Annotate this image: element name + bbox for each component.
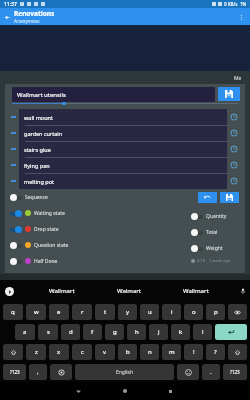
staticText: , [37, 368, 39, 376]
button[interactable]: Save name [218, 87, 240, 101]
staticText: u [148, 308, 152, 316]
button[interactable]: e [49, 304, 69, 320]
button[interactable]: Total [191, 224, 218, 240]
button[interactable]: Question state [10, 237, 69, 253]
button[interactable]: ?123 [223, 364, 247, 380]
staticText: h [135, 328, 139, 336]
button[interactable]: Drop state [10, 221, 59, 237]
staticText: garden curtain [24, 130, 63, 137]
staticText: Anonymous [14, 18, 40, 24]
button[interactable]: m [162, 344, 181, 360]
button[interactable]: Save [220, 192, 239, 203]
button[interactable]: Enter [215, 324, 247, 340]
staticText: Renovations [14, 9, 55, 18]
button[interactable]: p [206, 304, 225, 320]
staticText: Half Done [34, 258, 58, 265]
button[interactable]: l [193, 324, 212, 340]
staticText: Wallmart utensils [17, 91, 66, 99]
staticText: l [202, 328, 204, 336]
staticText: o [192, 308, 196, 316]
staticText: m [169, 348, 175, 356]
button[interactable]: j [149, 324, 168, 340]
button[interactable]: Weight [191, 240, 223, 256]
button[interactable]: Backspace [228, 304, 247, 320]
button[interactable]: Back [71, 384, 85, 398]
button[interactable]: c [72, 344, 92, 360]
button[interactable]: s [38, 324, 58, 340]
button[interactable]: f [83, 324, 102, 340]
staticText: e [57, 308, 61, 316]
button[interactable]: Expand toolbar [5, 287, 14, 296]
button[interactable]: English [75, 364, 174, 380]
button[interactable]: melting pot [5, 173, 245, 189]
staticText: x [57, 348, 61, 356]
button[interactable]: Back [0, 10, 14, 24]
button[interactable]: garden curtain [5, 125, 245, 141]
button[interactable]: u [140, 304, 159, 320]
staticText: c [81, 348, 84, 356]
staticText: d [69, 328, 73, 336]
button[interactable]: Waiting state [10, 205, 65, 221]
button[interactable]: Home [118, 384, 132, 398]
button[interactable]: r [72, 304, 92, 320]
button[interactable]: y [118, 304, 137, 320]
staticText: j [158, 328, 160, 336]
button[interactable]: t [95, 304, 115, 320]
button[interactable]: v [95, 344, 115, 360]
button[interactable]: Shift [3, 344, 23, 360]
button[interactable]: w [26, 304, 46, 320]
button[interactable]: d [61, 324, 80, 340]
button[interactable]: Wallmart utensils [12, 87, 215, 102]
button[interactable]: n [140, 344, 159, 360]
staticText: ? [214, 348, 217, 356]
staticText: Weight [206, 245, 223, 252]
staticText: w [34, 308, 39, 316]
button[interactable]: i [162, 304, 181, 320]
button[interactable]: a [15, 324, 35, 340]
button[interactable]: z [26, 344, 46, 360]
button[interactable]: More options [234, 10, 248, 24]
staticText: . [210, 368, 212, 376]
button[interactable]: . [202, 364, 220, 380]
staticText: ! [193, 348, 195, 356]
button[interactable]: k [171, 324, 190, 340]
button[interactable]: ? [206, 344, 225, 360]
staticText: t [104, 308, 107, 316]
staticText: a [23, 328, 27, 336]
staticText: f [91, 328, 94, 336]
staticText: r [81, 308, 84, 316]
button[interactable]: q [3, 304, 23, 320]
staticText: Quantity [206, 213, 227, 220]
button[interactable]: b [118, 344, 137, 360]
button[interactable]: x [49, 344, 69, 360]
staticText: 2.19 [197, 258, 205, 263]
button[interactable]: Emoji [177, 364, 199, 380]
button[interactable]: Shift [228, 344, 247, 360]
button[interactable]: Half Done [10, 253, 58, 269]
button[interactable]: Undo [198, 192, 217, 203]
button[interactable]: g [105, 324, 124, 340]
staticText: Waiting state [34, 210, 65, 217]
staticText: 1 week ago [209, 258, 231, 263]
staticText: English [116, 369, 134, 376]
button[interactable]: flying pan [5, 157, 245, 173]
staticText: g [113, 328, 117, 336]
staticText: ?123 [10, 369, 20, 375]
staticText: b [126, 348, 130, 356]
button[interactable]: Sequence [10, 189, 48, 205]
staticText: Me [234, 75, 242, 82]
staticText: Drop state [34, 226, 59, 233]
button[interactable]: h [127, 324, 146, 340]
button[interactable]: o [184, 304, 203, 320]
button[interactable]: ! [184, 344, 203, 360]
button[interactable]: , [29, 364, 47, 380]
button[interactable]: Quantity [191, 208, 227, 224]
button[interactable]: Settings [50, 364, 72, 380]
button[interactable]: Recents [163, 384, 177, 398]
staticText: 11:37 [4, 1, 17, 8]
staticText: wall mount [24, 114, 53, 121]
button[interactable]: ?123 [3, 364, 26, 380]
button[interactable]: wall mount [5, 109, 245, 125]
staticText: n [148, 348, 152, 356]
button[interactable]: stairs glue [5, 141, 245, 157]
